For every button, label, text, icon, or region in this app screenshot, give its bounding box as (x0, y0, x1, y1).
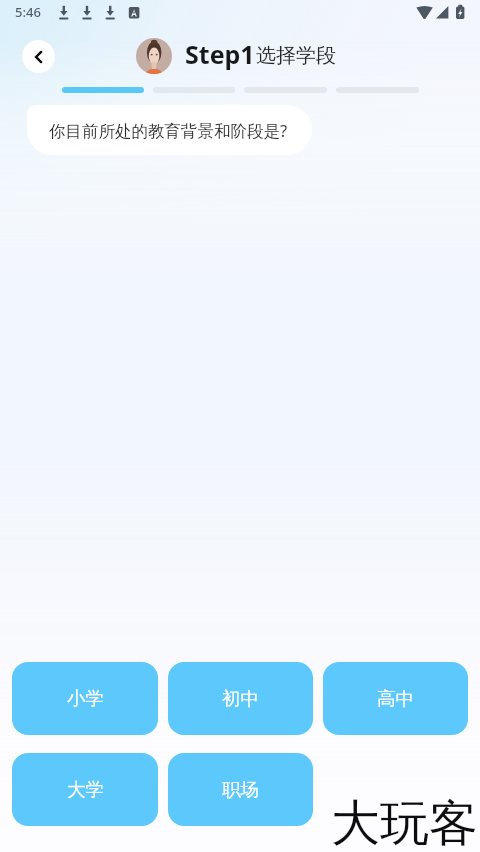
button[interactable]: 小学 (12, 662, 158, 735)
staticText: 高中 (377, 687, 414, 710)
staticText: 大学 (67, 778, 104, 801)
button[interactable]: 职场 (168, 753, 313, 826)
button[interactable]: 高中 (323, 662, 468, 735)
button[interactable]: 大学 (12, 753, 158, 826)
button[interactable]: Back (22, 40, 55, 73)
staticText: 你目前所处的教育背景和阶段是? (49, 119, 288, 142)
staticText: 选择学段 (256, 43, 336, 68)
staticText: 职场 (222, 778, 259, 801)
staticText: 5:46 (15, 3, 41, 21)
staticText: 大玩客 (331, 793, 478, 852)
button[interactable]: 初中 (168, 662, 313, 735)
staticText: 小学 (67, 687, 104, 710)
staticText: 初中 (222, 687, 259, 710)
staticText: Step1 (185, 37, 255, 71)
